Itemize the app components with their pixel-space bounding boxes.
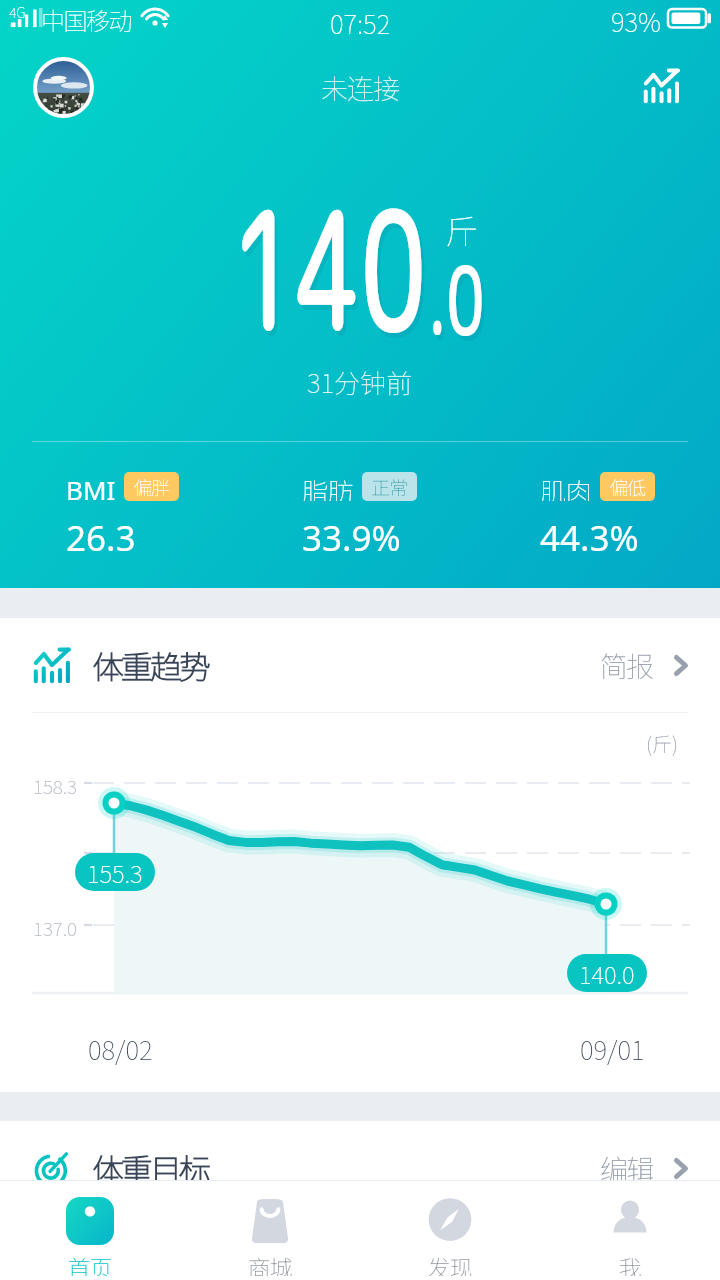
staticText: 偏低	[609, 473, 646, 501]
staticText: 155.3	[87, 855, 143, 890]
staticText: (斤)	[646, 729, 678, 758]
button[interactable]: 我	[540, 1181, 720, 1280]
staticText: 体重趋势	[92, 642, 209, 688]
staticText: .0	[428, 233, 484, 366]
button[interactable]: 体重趋势	[0, 618, 720, 712]
staticText: 07:52	[330, 4, 391, 42]
staticText: 正常	[371, 473, 408, 501]
staticText: 偏胖	[133, 473, 170, 501]
staticText: 26.3	[66, 514, 136, 562]
staticText: 140	[231, 154, 426, 384]
staticText: 商城	[248, 1250, 292, 1276]
staticText: 140.0	[579, 956, 635, 991]
staticText: 33.9%	[302, 514, 401, 562]
button[interactable]: 体重目标	[0, 1121, 720, 1215]
staticText: 斤	[445, 206, 478, 254]
staticText: 编辑	[600, 1148, 653, 1189]
staticText: 未连接	[321, 68, 399, 107]
button[interactable]: 发现	[360, 1181, 540, 1280]
staticText: 4G	[9, 2, 26, 22]
staticText: BMI	[66, 472, 116, 501]
staticText: 发现	[428, 1250, 472, 1276]
staticText: 158.3	[33, 772, 77, 800]
staticText: 肌肉	[540, 472, 592, 501]
staticText: 137.0	[33, 914, 77, 942]
staticText: 08/02	[88, 1030, 153, 1068]
button[interactable]: 商城	[180, 1181, 360, 1280]
button[interactable]: 首页	[0, 1181, 180, 1280]
staticText: 我	[619, 1250, 641, 1276]
staticText: 44.3%	[540, 514, 639, 562]
staticText: 体重目标	[92, 1145, 209, 1191]
button[interactable]: Profile	[33, 57, 94, 118]
staticText: 93%	[611, 2, 661, 40]
staticText: 31分钟前	[307, 363, 413, 401]
staticText: 脂肪	[302, 472, 354, 501]
staticText: 中国移动	[41, 2, 131, 37]
staticText: 140	[234, 159, 429, 389]
staticText: 首页	[68, 1250, 112, 1276]
button[interactable]: Statistics	[631, 56, 691, 116]
staticText: 09/01	[580, 1030, 645, 1068]
staticText: .0	[431, 238, 487, 371]
staticText: 简报	[600, 645, 653, 686]
